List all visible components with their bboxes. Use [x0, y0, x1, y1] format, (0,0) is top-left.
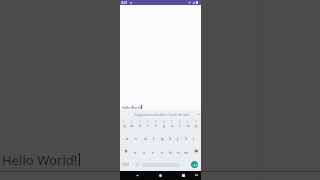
- button[interactable]: Backspace: [190, 144, 201, 157]
- staticText: j: [177, 135, 179, 141]
- button[interactable]: 9: [184, 118, 192, 131]
- staticText: ?123: [122, 163, 129, 167]
- staticText: 8: [179, 120, 181, 124]
- button[interactable]: v: [158, 144, 166, 157]
- button[interactable]: 2: [128, 118, 136, 131]
- button[interactable]: l: [190, 131, 198, 144]
- staticText: t: [155, 122, 157, 128]
- button[interactable]: d: [141, 131, 150, 144]
- button[interactable]: ?123: [121, 157, 130, 170]
- staticText: Hello World: [122, 105, 141, 110]
- staticText: g: [161, 135, 164, 141]
- staticText: 7: [171, 120, 173, 124]
- staticText: h: [169, 135, 172, 141]
- staticText: m: [184, 149, 189, 155]
- staticText: i: [179, 122, 181, 128]
- staticText: e: [139, 122, 142, 128]
- staticText: 2: [131, 120, 133, 124]
- button[interactable]: 6: [160, 118, 168, 131]
- staticText: q: [123, 122, 126, 128]
- staticText: y: [163, 122, 166, 128]
- button[interactable]: x: [140, 144, 149, 157]
- button[interactable]: Emoji: [134, 157, 140, 170]
- staticText: p: [195, 122, 198, 128]
- button[interactable]: 1: [121, 118, 128, 131]
- button[interactable]: z: [131, 144, 140, 157]
- button[interactable]: 4: [144, 118, 152, 131]
- button[interactable]: h: [166, 131, 174, 144]
- staticText: d: [144, 135, 147, 141]
- button[interactable]: Enter: [191, 161, 198, 168]
- staticText: o: [187, 122, 190, 128]
- button[interactable]: 5: [152, 118, 160, 131]
- staticText: n: [177, 149, 180, 155]
- button[interactable]: Shift: [120, 144, 131, 157]
- button[interactable]: 3: [136, 118, 144, 131]
- staticText: f: [153, 135, 155, 141]
- button[interactable]: b: [166, 144, 174, 157]
- staticText: 9: [187, 120, 189, 124]
- staticText: c: [152, 149, 155, 155]
- button[interactable]: Hide keyboard: [133, 171, 142, 180]
- staticText: a: [126, 135, 129, 141]
- staticText: 6: [163, 120, 165, 124]
- staticText: w: [130, 122, 134, 128]
- staticText: Suggestions disabled. Touch for info: [134, 113, 190, 117]
- other: More options: [196, 112, 200, 116]
- staticText: Hello World!: [2, 151, 78, 169]
- staticText: 5: [155, 120, 157, 124]
- button[interactable]: f: [150, 131, 158, 144]
- button[interactable]: k: [182, 131, 190, 144]
- staticText: .: [183, 161, 185, 167]
- staticText: 0: [195, 120, 197, 124]
- button[interactable]: n: [174, 144, 182, 157]
- button[interactable]: Suggestions disabled. Touch for info: [120, 110, 201, 118]
- staticText: b: [169, 149, 172, 155]
- staticText: u: [171, 122, 174, 128]
- button[interactable]: 0: [192, 118, 200, 131]
- staticText: 3: [139, 120, 141, 124]
- button[interactable]: Switch keyboard: [192, 171, 200, 179]
- button[interactable]: Home: [156, 171, 165, 180]
- staticText: l: [193, 135, 195, 141]
- button[interactable]: a: [123, 131, 132, 144]
- button[interactable]: Recent apps: [179, 171, 188, 180]
- button[interactable]: 7: [168, 118, 176, 131]
- staticText: 4:21: [121, 1, 128, 5]
- staticText: v: [161, 149, 164, 155]
- staticText: 4: [147, 120, 149, 124]
- staticText: 1: [124, 120, 126, 124]
- staticText: z: [134, 149, 137, 155]
- button[interactable]: Hello World: [120, 104, 201, 111]
- staticText: x: [143, 149, 146, 155]
- button[interactable]: m: [182, 144, 190, 157]
- button[interactable]: s: [132, 131, 141, 144]
- staticText: s: [135, 135, 138, 141]
- staticText: k: [185, 135, 188, 141]
- staticText: r: [147, 122, 149, 128]
- button[interactable]: g: [158, 131, 166, 144]
- button[interactable]: c: [149, 144, 158, 157]
- button[interactable]: j: [174, 131, 182, 144]
- button[interactable]: 8: [176, 118, 184, 131]
